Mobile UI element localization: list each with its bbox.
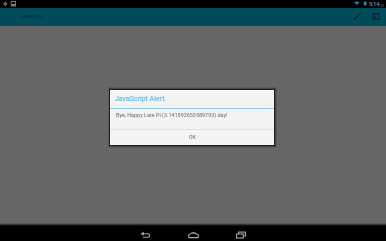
staticText: JavaScript Alert (115, 95, 165, 103)
button[interactable]: Home (169, 226, 217, 241)
button[interactable]: Edit (348, 8, 366, 26)
button[interactable]: Back (121, 226, 169, 241)
staticText: OK (189, 134, 196, 140)
button[interactable]: Console (367, 8, 385, 26)
staticText: 5:14 (369, 1, 380, 7)
button[interactable]: OK (110, 130, 274, 144)
staticText: Bye, Happy Late Pi (3.141592653589793) d… (116, 112, 228, 118)
staticText: PM (378, 3, 384, 7)
staticText: Launcher (20, 13, 43, 19)
button[interactable]: Recent apps (217, 226, 265, 241)
